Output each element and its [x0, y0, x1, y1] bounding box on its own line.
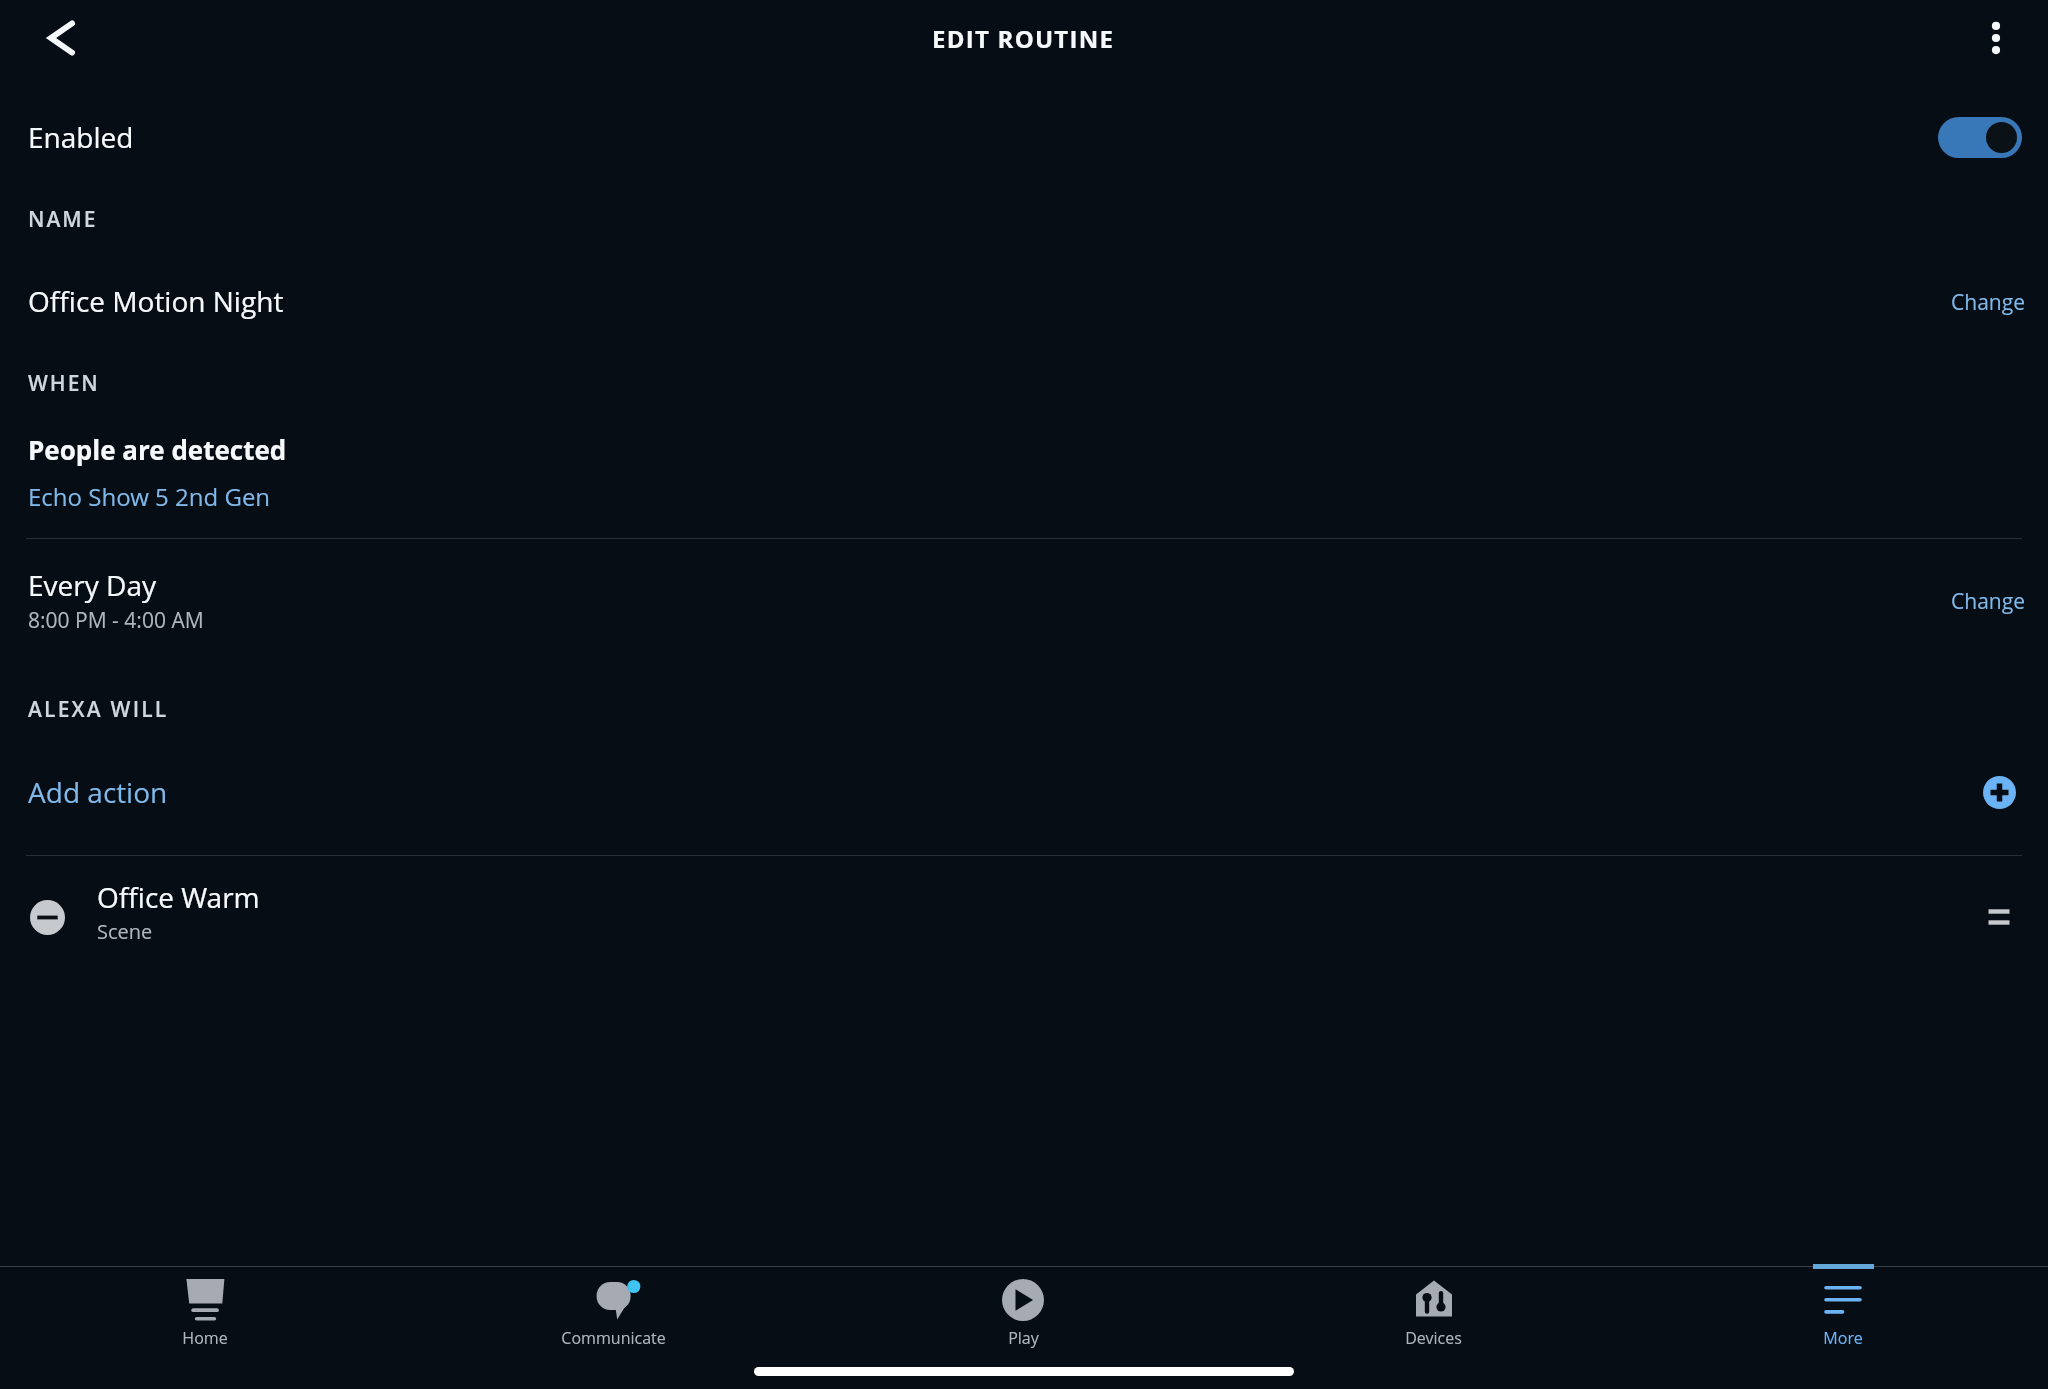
- staticText: Change: [1951, 587, 2025, 616]
- button[interactable]: Reorder: [1978, 896, 2020, 938]
- button[interactable]: [0, 420, 2048, 520]
- staticText: 8:00 PM - 4:00 AM: [28, 606, 204, 635]
- button[interactable]: More: [1638, 1267, 2048, 1357]
- staticText: Scene: [97, 918, 153, 945]
- button[interactable]: Play: [818, 1267, 1228, 1357]
- staticText: WHEN: [28, 369, 100, 398]
- button[interactable]: Communicate: [409, 1267, 818, 1357]
- staticText: Office Warm: [97, 878, 260, 916]
- button[interactable]: Add action: [1983, 776, 2016, 809]
- staticText: Echo Show 5 2nd Gen: [28, 480, 271, 513]
- staticText: People are detected: [28, 432, 287, 467]
- button[interactable]: Back: [27, 2, 99, 74]
- button[interactable]: Devices: [1228, 1267, 1638, 1357]
- button[interactable]: More options: [1965, 7, 2027, 69]
- button[interactable]: Enabled toggle: [1938, 117, 2022, 158]
- button[interactable]: [1931, 577, 2041, 633]
- button[interactable]: [0, 98, 2048, 176]
- staticText: More: [1823, 1327, 1863, 1349]
- staticText: ALEXA WILL: [28, 695, 169, 724]
- staticText: Devices: [1405, 1327, 1462, 1349]
- staticText: Communicate: [561, 1327, 666, 1349]
- staticText: Office Motion Night: [28, 282, 284, 320]
- button[interactable]: [0, 856, 2048, 976]
- staticText: Enabled: [28, 118, 134, 156]
- button[interactable]: Home: [0, 1267, 409, 1357]
- button[interactable]: [0, 760, 2048, 828]
- staticText: Home: [182, 1327, 228, 1349]
- staticText: Every Day: [28, 566, 157, 604]
- staticText: Change: [1951, 288, 2025, 317]
- button[interactable]: Remove action: [30, 900, 65, 935]
- staticText: Add action: [28, 773, 168, 811]
- staticText: NAME: [28, 205, 98, 234]
- button[interactable]: [0, 262, 2048, 334]
- button[interactable]: [1931, 278, 2041, 334]
- staticText: Play: [1008, 1327, 1039, 1349]
- staticText: EDIT ROUTINE: [932, 22, 1115, 55]
- button[interactable]: [0, 556, 2048, 646]
